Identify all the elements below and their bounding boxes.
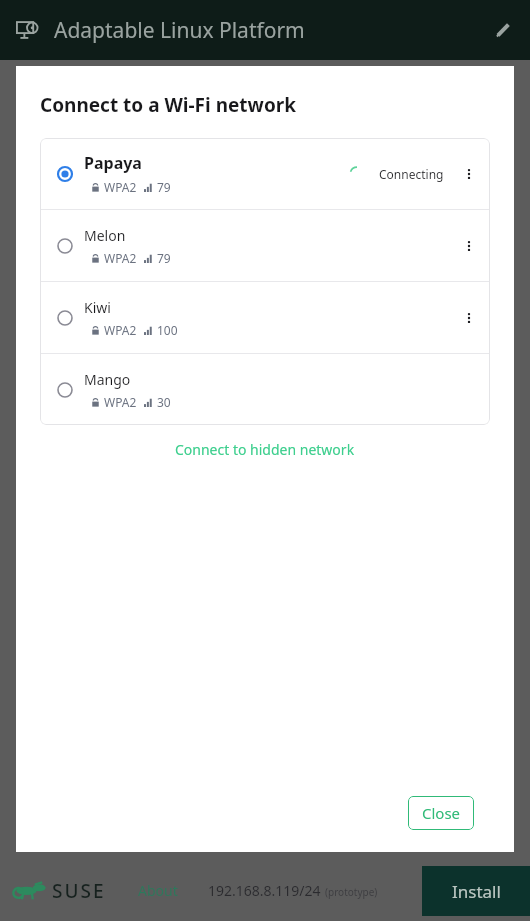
staticText: Connect to a Wi-Fi network [40, 92, 297, 118]
staticText: Mango [84, 370, 131, 389]
staticText: 30 [157, 394, 171, 410]
button[interactable]: Papaya [40, 138, 490, 209]
staticText: WPA2 [104, 322, 137, 338]
button[interactable]: About [134, 877, 182, 904]
staticText: 79 [157, 179, 171, 195]
staticText: WPA2 [104, 250, 137, 266]
staticText: Adaptable Linux Platform [54, 16, 305, 45]
staticText: Papaya [84, 152, 142, 174]
staticText: SUSE [52, 878, 106, 904]
staticText: (prototype) [325, 885, 378, 899]
staticText: WPA2 [104, 394, 137, 410]
staticText: Melon [84, 226, 126, 245]
staticText: WPA2 [104, 179, 137, 195]
staticText: About [138, 881, 178, 900]
staticText: 79 [157, 250, 171, 266]
button[interactable]: More options for Melon [454, 231, 484, 261]
button[interactable]: More options for Kiwi [454, 303, 484, 333]
staticText: Close [422, 803, 461, 823]
other: SUSE chameleon [12, 881, 48, 901]
button[interactable]: Edit [488, 15, 518, 45]
button[interactable]: Mango [40, 354, 490, 425]
staticText: 100 [157, 322, 178, 338]
button[interactable]: Close [408, 796, 474, 830]
staticText: 192.168.8.119/24 [208, 881, 321, 900]
other: Product logo [12, 15, 42, 45]
staticText: Connecting [379, 166, 444, 182]
button[interactable]: Melon [40, 210, 490, 281]
button[interactable]: Install [422, 866, 530, 916]
staticText: Kiwi [84, 298, 111, 317]
staticText: Connect to hidden network [175, 440, 355, 459]
button[interactable]: Connect to hidden network [167, 436, 363, 463]
button[interactable]: Kiwi [40, 282, 490, 353]
button[interactable]: More options for Papaya [454, 159, 484, 189]
staticText: Install [452, 880, 501, 903]
